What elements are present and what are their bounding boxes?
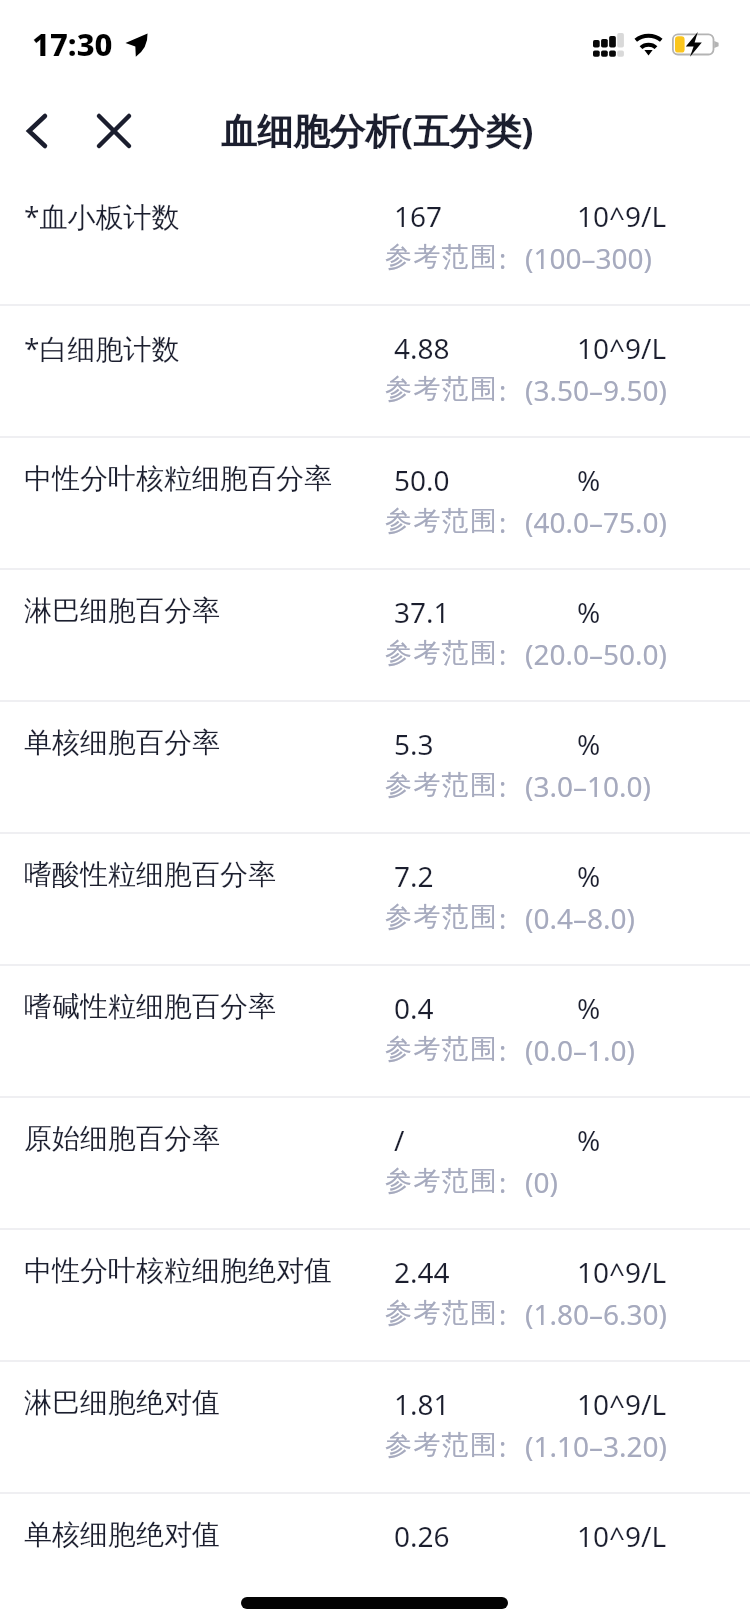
staticText: 原始细胞百分率 [24, 1121, 220, 1156]
button[interactable]: *血小板计数 [0, 172, 750, 304]
staticText: 10^9/L [577, 1385, 667, 1423]
button[interactable]: 中性分叶核粒细胞绝对值 [0, 1228, 750, 1360]
button[interactable]: 嗜酸性粒细胞百分率 [0, 832, 750, 964]
staticText: : [499, 636, 507, 673]
staticText: 参考范围 [385, 1296, 499, 1330]
button[interactable]: 原始细胞百分率 [0, 1096, 750, 1228]
staticText: 4.88 [394, 329, 450, 367]
staticText: 参考范围 [385, 1164, 499, 1198]
staticText: 血细胞分析(五分类) [221, 106, 534, 155]
staticText: : [499, 900, 507, 937]
staticText: (20.0–50.0) [525, 635, 667, 673]
staticText: (3.0–10.0) [525, 767, 651, 805]
staticText: 淋巴细胞百分率 [24, 593, 220, 628]
button[interactable]: *白细胞计数 [0, 304, 750, 436]
staticText: 单核细胞绝对值 [24, 1517, 220, 1552]
staticText: % [577, 1121, 601, 1159]
staticText: : [499, 504, 507, 541]
staticText: % [577, 593, 601, 631]
staticText: % [577, 989, 601, 1027]
button[interactable]: Back [13, 107, 61, 155]
button[interactable]: 淋巴细胞百分率 [0, 568, 750, 700]
staticText: 嗜碱性粒细胞百分率 [24, 989, 276, 1024]
staticText: 参考范围 [385, 372, 499, 406]
staticText: 淋巴细胞绝对值 [24, 1385, 220, 1420]
staticText: (0) [525, 1163, 558, 1201]
staticText: 10^9/L [577, 1253, 667, 1291]
staticText: 中性分叶核粒细胞百分率 [24, 461, 332, 496]
staticText: (0.4–8.0) [525, 899, 635, 937]
staticText: (0.0–1.0) [525, 1031, 635, 1069]
staticText: 参考范围 [385, 768, 499, 802]
staticText: (1.10–3.20) [525, 1427, 667, 1465]
staticText: % [577, 461, 601, 499]
button[interactable]: 单核细胞绝对值 [0, 1492, 750, 1624]
staticText: : [499, 372, 507, 409]
staticText: (40.0–75.0) [525, 503, 667, 541]
staticText: (100–300) [525, 239, 652, 277]
staticText: 参考范围 [385, 1032, 499, 1066]
staticText: 37.1 [394, 593, 450, 631]
button[interactable]: 淋巴细胞绝对值 [0, 1360, 750, 1492]
staticText: 50.0 [394, 461, 450, 499]
staticText: *白细胞计数 [24, 329, 180, 367]
staticText: / [394, 1121, 405, 1159]
staticText: % [577, 857, 601, 895]
button[interactable]: 中性分叶核粒细胞百分率 [0, 436, 750, 568]
staticText: 5.3 [394, 725, 434, 763]
staticText: 17:30 [32, 23, 113, 65]
staticText: 0.4 [394, 989, 434, 1027]
button[interactable]: 单核细胞百分率 [0, 700, 750, 832]
staticText: *血小板计数 [24, 197, 180, 235]
button[interactable]: 嗜碱性粒细胞百分率 [0, 964, 750, 1096]
staticText: (3.50–9.50) [525, 371, 667, 409]
staticText: 10^9/L [577, 1517, 667, 1555]
button[interactable]: Close [90, 107, 138, 155]
staticText: : [499, 240, 507, 277]
staticText: 参考范围 [385, 504, 499, 538]
staticText: (1.80–6.30) [525, 1295, 667, 1333]
staticText: 参考范围 [385, 1428, 499, 1462]
staticText: 167 [394, 197, 443, 235]
staticText: 参考范围 [385, 636, 499, 670]
staticText: 2.44 [394, 1253, 450, 1291]
staticText: : [499, 1164, 507, 1201]
staticText: 中性分叶核粒细胞绝对值 [24, 1253, 332, 1288]
staticText: 参考范围 [385, 900, 499, 934]
staticText: 0.26 [394, 1517, 450, 1555]
staticText: 10^9/L [577, 197, 667, 235]
staticText: 10^9/L [577, 329, 667, 367]
staticText: 1.81 [394, 1385, 450, 1423]
staticText: 7.2 [394, 857, 434, 895]
staticText: : [499, 768, 507, 805]
staticText: 单核细胞百分率 [24, 725, 220, 760]
staticText: 嗜酸性粒细胞百分率 [24, 857, 276, 892]
staticText: : [499, 1032, 507, 1069]
staticText: 参考范围 [385, 240, 499, 274]
staticText: : [499, 1428, 507, 1465]
staticText: % [577, 725, 601, 763]
staticText: : [499, 1296, 507, 1333]
